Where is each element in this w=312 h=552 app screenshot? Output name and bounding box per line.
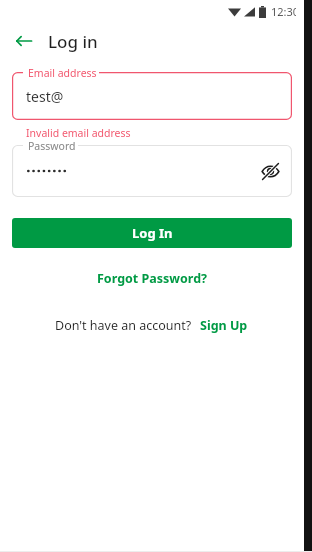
staticText: 12:30 — [271, 4, 300, 19]
button[interactable]: Log In — [12, 218, 292, 248]
button[interactable]: Email address — [12, 72, 292, 120]
staticText: Email address — [28, 66, 97, 80]
button[interactable]: Show password — [254, 155, 286, 187]
staticText: Password — [28, 139, 76, 153]
staticText: Don't have an account? — [55, 317, 192, 334]
button[interactable]: Back — [8, 25, 40, 57]
staticText: test@ — [26, 87, 64, 106]
staticText: Forgot Password? — [97, 270, 208, 287]
button[interactable]: Sign Up — [198, 314, 250, 337]
staticText: Log In — [132, 224, 173, 242]
staticText: Sign Up — [200, 317, 248, 334]
button[interactable]: Password — [12, 145, 292, 197]
button[interactable]: Forgot Password? — [91, 267, 214, 290]
staticText: Invalid email address — [26, 126, 131, 140]
staticText: Log in — [48, 30, 98, 53]
